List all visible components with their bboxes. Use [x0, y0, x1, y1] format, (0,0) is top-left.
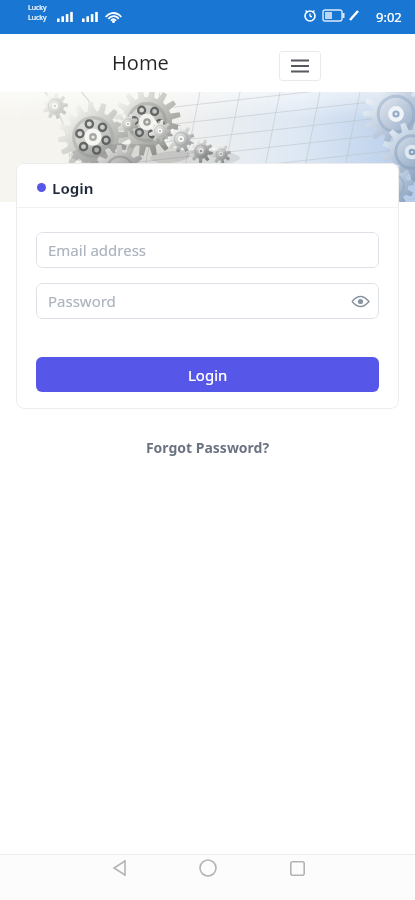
button[interactable] — [279, 51, 321, 81]
button[interactable]: Password — [36, 283, 379, 319]
staticText: Home — [112, 49, 169, 76]
staticText: Lucky — [28, 13, 47, 23]
button[interactable] — [89, 854, 149, 882]
staticText: Password — [48, 291, 116, 311]
staticText: 9:02 — [376, 8, 402, 26]
button[interactable]: Forgot Password? — [0, 438, 415, 457]
staticText: Login — [188, 365, 228, 385]
staticText: Lucky — [28, 3, 47, 13]
button[interactable]: Login — [36, 357, 379, 392]
button[interactable] — [349, 290, 371, 312]
button[interactable] — [178, 854, 238, 882]
staticText: Email address — [48, 240, 147, 260]
staticText: Login — [52, 178, 94, 198]
button[interactable]: Email address — [36, 232, 379, 268]
button[interactable] — [267, 854, 327, 882]
